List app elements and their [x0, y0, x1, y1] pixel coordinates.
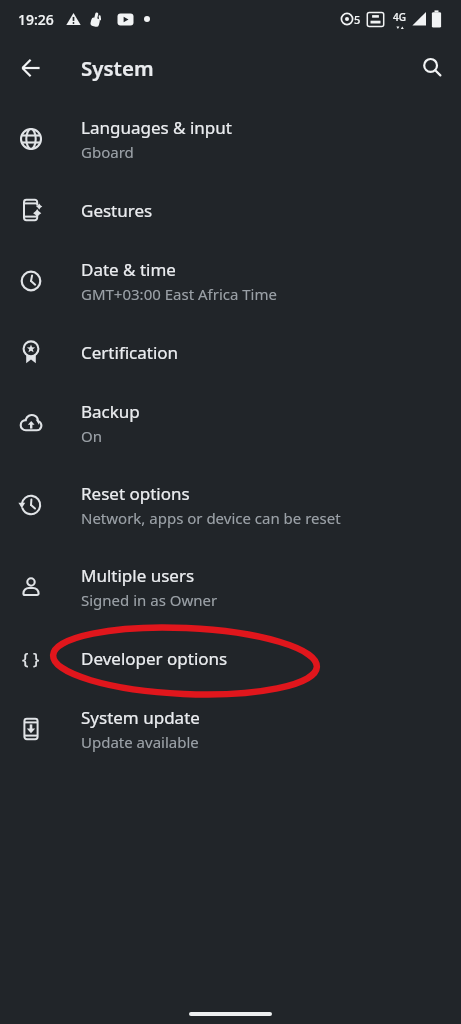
staticText: 5 [354, 12, 361, 27]
staticText: Backup [81, 400, 140, 423]
staticText: Gboard [81, 142, 134, 162]
staticText: Certification [81, 341, 179, 364]
button[interactable]: Languages & input [0, 98, 461, 180]
staticText: 4G [393, 10, 406, 24]
staticText: Gestures [81, 199, 153, 222]
button[interactable]: Date & time [0, 240, 461, 322]
staticText: GMT+03:00 East Africa Time [81, 284, 277, 304]
staticText: Date & time [81, 258, 176, 281]
button[interactable]: Backup [0, 382, 461, 464]
staticText: Multiple users [81, 564, 195, 587]
staticText: System [81, 54, 154, 82]
button[interactable]: Multiple users [0, 546, 461, 628]
staticText: Signed in as Owner [81, 590, 218, 610]
staticText: 19:26 [18, 10, 54, 29]
staticText: Update available [81, 732, 199, 752]
staticText: Languages & input [81, 116, 232, 139]
button[interactable]: Reset options [0, 464, 461, 546]
staticText: Developer options [81, 647, 228, 670]
staticText: System update [81, 706, 200, 729]
button[interactable]: System update [0, 688, 461, 770]
button[interactable]: Gestures [0, 180, 461, 240]
button[interactable] [422, 57, 444, 79]
button[interactable]: Certification [0, 322, 461, 382]
staticText: { } [22, 647, 40, 670]
staticText: Network, apps or device can be reset [81, 508, 341, 528]
staticText: Reset options [81, 482, 190, 505]
button[interactable] [21, 58, 41, 78]
staticText: On [81, 426, 102, 446]
button[interactable]: { } [0, 628, 461, 688]
